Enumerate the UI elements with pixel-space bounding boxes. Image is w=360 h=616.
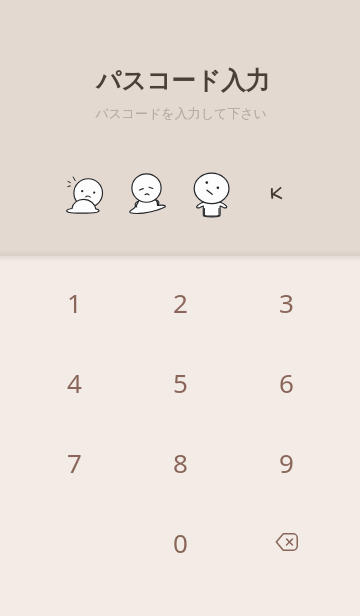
staticText: 8 bbox=[173, 445, 188, 480]
staticText: 7 bbox=[67, 445, 82, 480]
button[interactable]: 6 bbox=[250, 355, 322, 409]
staticText: 1 bbox=[67, 285, 82, 320]
button[interactable]: Delete bbox=[250, 515, 322, 569]
button[interactable]: 5 bbox=[144, 355, 216, 409]
button[interactable]: 0 bbox=[144, 515, 216, 569]
button[interactable]: 7 bbox=[38, 435, 110, 489]
staticText: 5 bbox=[173, 365, 188, 400]
staticText: パスコードを入力して下さい bbox=[95, 105, 267, 121]
staticText: パスコード入力 bbox=[96, 65, 270, 96]
button[interactable]: 3 bbox=[250, 275, 322, 329]
button[interactable]: 2 bbox=[144, 275, 216, 329]
staticText: 9 bbox=[279, 445, 294, 480]
button[interactable]: 4 bbox=[38, 355, 110, 409]
staticText: 0 bbox=[173, 525, 188, 560]
button[interactable]: 8 bbox=[144, 435, 216, 489]
staticText: 2 bbox=[173, 285, 188, 320]
staticText: 4 bbox=[67, 365, 82, 400]
button[interactable]: 9 bbox=[250, 435, 322, 489]
staticText: 3 bbox=[279, 285, 294, 320]
staticText: 6 bbox=[279, 365, 294, 400]
button[interactable]: 1 bbox=[38, 275, 110, 329]
